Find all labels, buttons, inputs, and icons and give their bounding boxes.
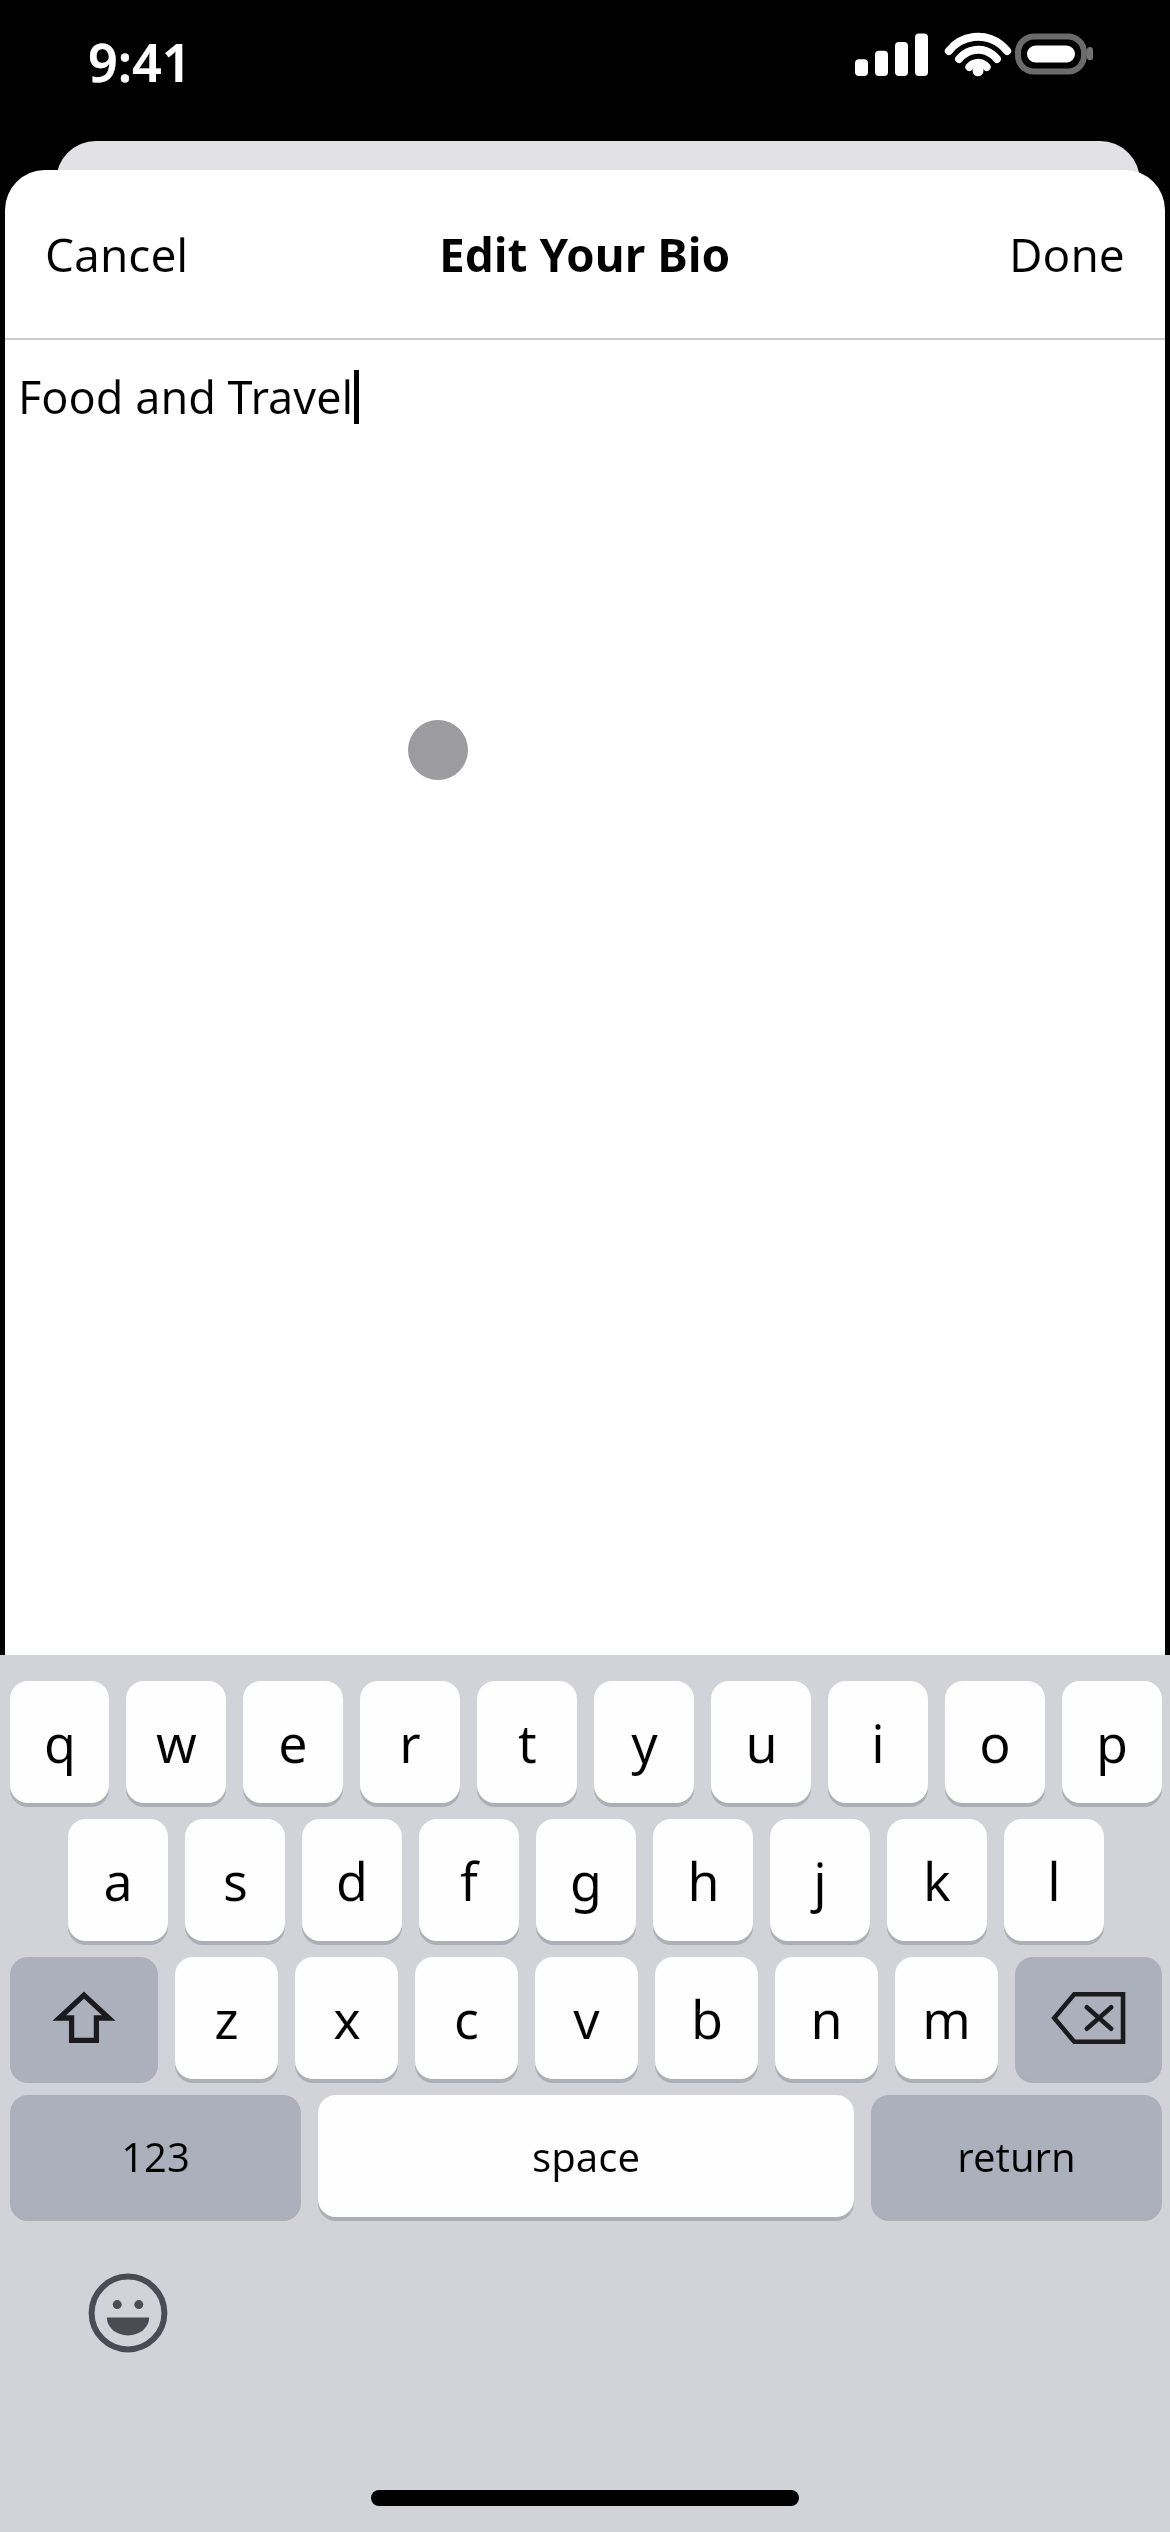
staticText: s <box>223 1845 248 1916</box>
staticText: Edit Your Bio <box>439 223 731 286</box>
button[interactable]: f <box>419 1819 519 1941</box>
staticText: y <box>631 1707 658 1778</box>
button[interactable]: j <box>770 1819 870 1941</box>
staticText: d <box>336 1845 368 1916</box>
staticText: t <box>518 1707 537 1778</box>
staticText: b <box>691 1983 723 2054</box>
button[interactable]: u <box>711 1681 811 1803</box>
staticText: x <box>333 1983 361 2054</box>
button[interactable]: p <box>1062 1681 1162 1803</box>
button[interactable]: l <box>1004 1819 1104 1941</box>
staticText: Cancel <box>45 223 189 286</box>
staticText: v <box>573 1983 600 2054</box>
staticText: l <box>1047 1845 1061 1916</box>
staticText: q <box>44 1707 76 1778</box>
staticText: return <box>957 2129 1076 2183</box>
button[interactable]: c <box>415 1957 518 2079</box>
staticText: j <box>813 1845 827 1916</box>
button[interactable]: return <box>871 2095 1162 2217</box>
staticText: g <box>570 1845 602 1916</box>
button[interactable]: x <box>295 1957 398 2079</box>
button[interactable]: b <box>655 1957 758 2079</box>
button[interactable]: s <box>185 1819 285 1941</box>
staticText: f <box>460 1845 478 1916</box>
staticText: u <box>745 1707 778 1778</box>
staticText: r <box>399 1707 421 1778</box>
staticText: 9:41 <box>88 26 192 97</box>
staticText: p <box>1096 1707 1128 1778</box>
button[interactable]: Emoji keyboard <box>64 2249 192 2377</box>
staticText: k <box>923 1845 951 1916</box>
button[interactable]: space <box>318 2095 854 2217</box>
staticText: n <box>810 1983 843 2054</box>
staticText: z <box>214 1983 239 2054</box>
button[interactable]: i <box>828 1681 928 1803</box>
staticText: Done <box>1009 223 1125 286</box>
button[interactable]: w <box>126 1681 226 1803</box>
button[interactable]: t <box>477 1681 577 1803</box>
staticText: Food and Travel <box>18 366 354 427</box>
staticText: 123 <box>121 2129 190 2183</box>
button[interactable]: Shift <box>10 1957 158 2079</box>
button[interactable]: n <box>775 1957 878 2079</box>
staticText: a <box>103 1845 133 1916</box>
button[interactable]: g <box>536 1819 636 1941</box>
staticText: e <box>278 1707 308 1778</box>
button[interactable]: o <box>945 1681 1045 1803</box>
button[interactable]: z <box>175 1957 278 2079</box>
button[interactable]: q <box>10 1681 109 1803</box>
button[interactable]: h <box>653 1819 753 1941</box>
button[interactable]: y <box>594 1681 694 1803</box>
button[interactable]: r <box>360 1681 460 1803</box>
staticText: w <box>156 1707 197 1778</box>
button[interactable]: m <box>895 1957 998 2079</box>
button[interactable]: v <box>535 1957 638 2079</box>
button[interactable]: Delete <box>1015 1957 1162 2079</box>
button[interactable]: Cancel <box>5 197 229 312</box>
staticText: i <box>871 1707 885 1778</box>
button[interactable]: e <box>243 1681 343 1803</box>
staticText: space <box>532 2129 640 2183</box>
button[interactable]: a <box>68 1819 168 1941</box>
staticText: o <box>979 1707 1011 1778</box>
staticText: c <box>454 1983 479 2054</box>
button[interactable]: k <box>887 1819 987 1941</box>
staticText: h <box>687 1845 720 1916</box>
button[interactable]: Done <box>969 197 1165 312</box>
staticText: m <box>922 1983 971 2054</box>
button[interactable]: d <box>302 1819 402 1941</box>
button[interactable]: 123 <box>10 2095 301 2217</box>
